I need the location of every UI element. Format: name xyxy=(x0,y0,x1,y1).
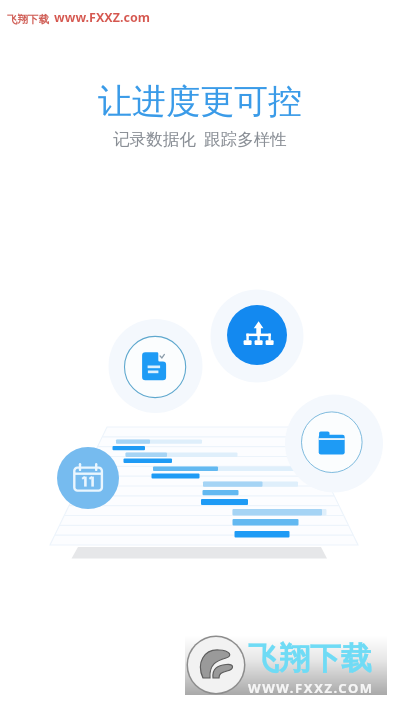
staticText: 记录数据化 跟踪多样性 xyxy=(113,127,287,150)
staticText: 飞翔下载 xyxy=(7,13,49,26)
staticText: WWW.FXXZ.COM xyxy=(248,679,374,695)
staticText: 让进度更可控 xyxy=(98,80,302,123)
staticText: 飞翔下载 xyxy=(248,639,372,678)
staticText: www.FXXZ.com xyxy=(54,9,150,26)
